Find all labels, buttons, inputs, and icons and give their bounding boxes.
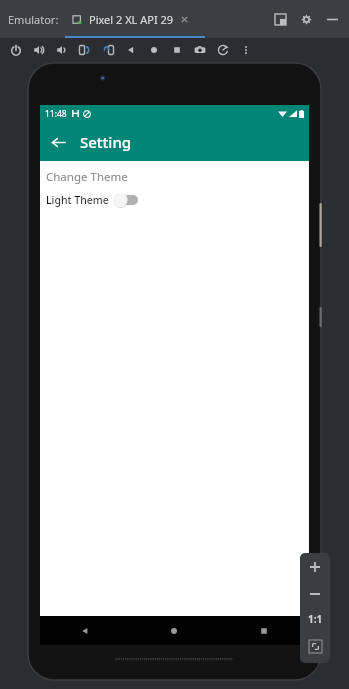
button[interactable]: Overview: [219, 616, 309, 645]
button[interactable]: Zoom in: [300, 553, 330, 581]
staticText: Light Theme: [46, 193, 109, 207]
staticText: Change Theme: [46, 169, 128, 185]
button[interactable]: Home: [142, 39, 165, 61]
button[interactable]: Actual size: [300, 606, 330, 632]
button[interactable]: Overview: [165, 39, 188, 61]
button[interactable]: Screenshot: [188, 39, 211, 61]
button[interactable]: Zoom out: [300, 581, 330, 606]
button[interactable]: Light Theme: [40, 190, 309, 210]
button[interactable]: Back: [40, 616, 129, 645]
staticText: 1:1: [308, 612, 323, 626]
button[interactable]: Minimize: [323, 10, 341, 28]
button[interactable]: Power: [4, 39, 27, 61]
staticText: 11:48: [45, 108, 67, 120]
button[interactable]: Navigate up: [46, 130, 70, 154]
button[interactable]: Pixel 2 XL API 29: [72, 12, 189, 27]
button[interactable]: Light Theme toggle: [112, 192, 139, 208]
button[interactable]: Rotate right: [96, 39, 119, 61]
button[interactable]: Fit to window: [300, 632, 330, 660]
button[interactable]: More: [234, 39, 257, 61]
staticText: Setting: [80, 132, 132, 152]
staticText: Emulator:: [8, 12, 59, 27]
button[interactable]: Settings: [297, 10, 315, 28]
button[interactable]: Volume down: [50, 39, 73, 61]
button[interactable]: Home: [129, 616, 219, 645]
button[interactable]: Volume up: [27, 39, 50, 61]
button[interactable]: Rotate left: [73, 39, 96, 61]
staticText: Pixel 2 XL API 29: [89, 12, 174, 27]
button[interactable]: History: [211, 39, 234, 61]
button[interactable]: Dock window: [271, 10, 289, 28]
button[interactable]: Back: [119, 39, 142, 61]
